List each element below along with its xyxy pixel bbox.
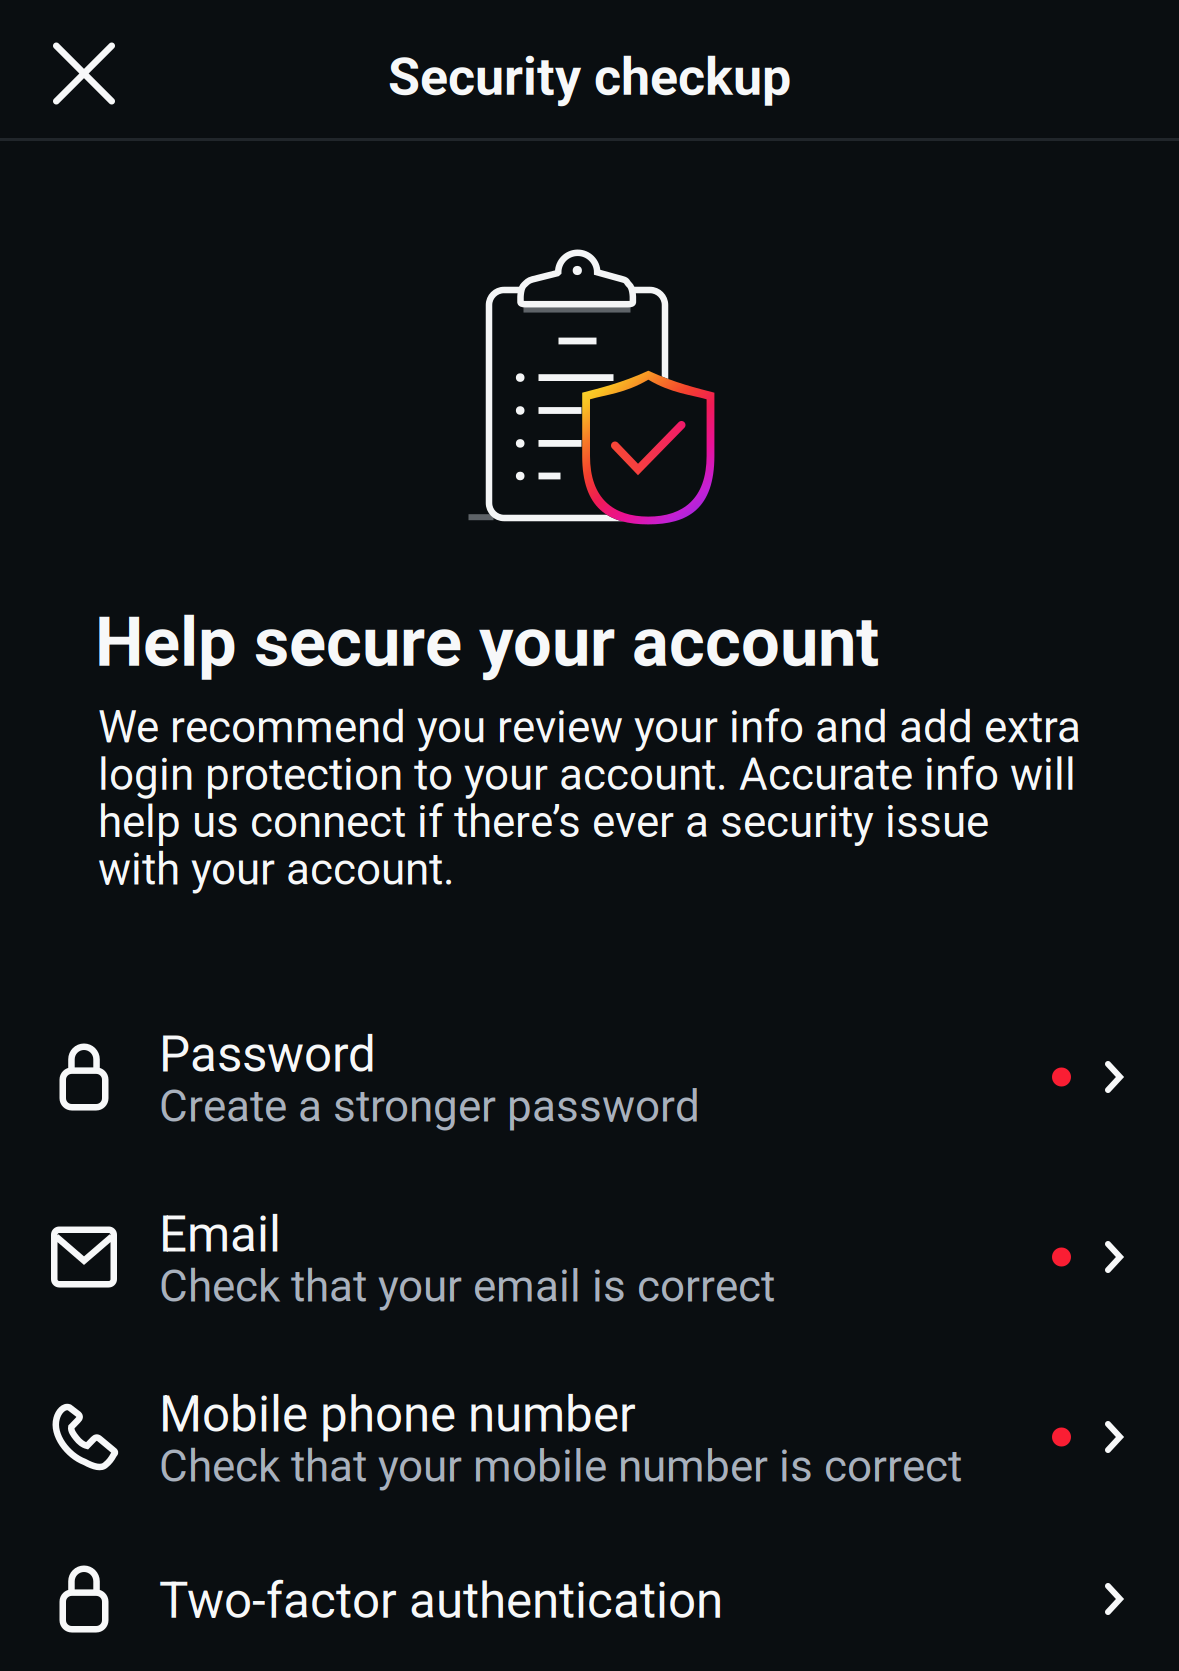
button[interactable]: Email [0, 1167, 1179, 1347]
button[interactable]: Two-factor authentication [0, 1527, 1179, 1671]
staticText: We recommend you review your info and ad… [98, 703, 1081, 893]
staticText: Help secure your account [95, 602, 879, 682]
staticText: Mobile phone number [159, 1386, 636, 1444]
staticText: Password [159, 1026, 376, 1084]
button[interactable]: Close [28, 17, 140, 129]
staticText: Check that your mobile number is correct [159, 1441, 962, 1492]
staticText: Two-factor authentication [159, 1572, 723, 1630]
staticText: Create a stronger password [159, 1081, 700, 1132]
staticText: Check that your email is correct [159, 1261, 775, 1312]
staticText: Email [159, 1206, 281, 1264]
button[interactable]: Password [0, 987, 1179, 1167]
staticText: Security checkup [388, 46, 791, 107]
button[interactable]: Mobile phone number [0, 1347, 1179, 1527]
